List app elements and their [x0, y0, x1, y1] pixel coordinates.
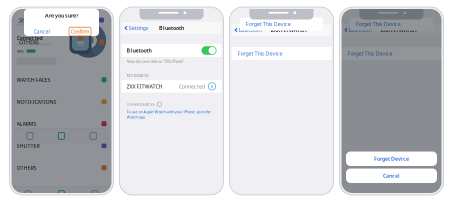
button[interactable]: Forget Device: [346, 151, 437, 166]
staticText: Bluetooth: [159, 24, 184, 32]
staticText: SHUTTER: [16, 142, 39, 149]
button[interactable]: SHUTTER: [14, 9, 109, 31]
staticText: SHUTTER: [19, 17, 42, 24]
staticText: Connected: [179, 83, 205, 90]
button[interactable]: ALARMS: [14, 0, 109, 9]
staticText: Cancel: [33, 28, 49, 35]
staticText: Forget This Device: [347, 50, 392, 57]
staticText: WATCH FACES: [16, 76, 50, 83]
staticText: To use an Apple Watch with your iPhone, …: [126, 109, 210, 119]
button[interactable]: Cancel: [346, 168, 437, 183]
staticText: OTHER DEVICES: [126, 102, 154, 107]
staticText: OTHERS: [19, 39, 39, 46]
staticText: MY DEVICES: [126, 73, 148, 78]
staticText: Bluetooth: [239, 26, 262, 34]
button[interactable]: Forget This Device: [350, 17, 433, 30]
button[interactable]: More info: [207, 82, 216, 91]
button[interactable]: Cancel: [32, 27, 51, 36]
staticText: Settings: [129, 24, 149, 32]
staticText: Confirm: [70, 28, 89, 35]
staticText: NOTIFICATIONS: [16, 98, 56, 105]
button[interactable]: Devices: [14, 128, 46, 143]
button[interactable]: Profile: [78, 187, 111, 202]
staticText: Bluetooth: [126, 47, 151, 54]
staticText: ZXX FITWATCH: [16, 20, 52, 27]
button[interactable]: NOTIFICATIONS: [11, 91, 111, 113]
button[interactable]: OTHERS: [14, 31, 109, 53]
button[interactable]: Bluetooth: [231, 24, 264, 36]
button[interactable]: Bluetooth on: [201, 46, 216, 55]
staticText: ZXX FITWATCH: [381, 26, 417, 34]
button[interactable]: ZXX FITWATCH: [121, 80, 221, 93]
button[interactable]: Devices: [11, 187, 45, 202]
staticText: Forget This Device: [237, 50, 282, 57]
staticText: Forget This Device: [246, 20, 291, 28]
button[interactable]: WATCH FACES: [11, 69, 111, 91]
staticText: Cancel: [383, 172, 400, 179]
button[interactable]: Home: [46, 128, 77, 143]
staticText: Forget Device: [374, 155, 409, 162]
button[interactable]: ALARMS: [11, 113, 111, 135]
button[interactable]: Profile: [77, 128, 109, 143]
button[interactable]: SHUTTER: [11, 135, 111, 157]
staticText: Connected: [16, 34, 42, 41]
staticText: ZXX FITWATCH: [271, 26, 307, 34]
staticText: ZXX FITWATCH: [126, 83, 162, 90]
staticText: ALARMS: [16, 120, 36, 127]
button[interactable]: Confirm: [69, 27, 91, 36]
staticText: 98%: [16, 48, 24, 54]
staticText: Forget This Device: [356, 20, 401, 28]
button[interactable]: OTHERS: [11, 157, 111, 179]
staticText: Are you sure?: [45, 12, 78, 19]
button[interactable]: Forget This Device: [341, 47, 441, 60]
staticText: Now discoverable as “ZXX-iPhone”.: [126, 58, 184, 64]
button[interactable]: Forget This Device: [231, 47, 331, 60]
staticText: OTHERS: [16, 164, 36, 171]
button[interactable]: Bluetooth: [341, 24, 374, 36]
button[interactable]: Home: [45, 187, 78, 202]
button[interactable]: Settings: [121, 22, 151, 34]
staticText: Bluetooth: [349, 26, 372, 34]
button[interactable]: Forget This Device: [240, 17, 323, 30]
